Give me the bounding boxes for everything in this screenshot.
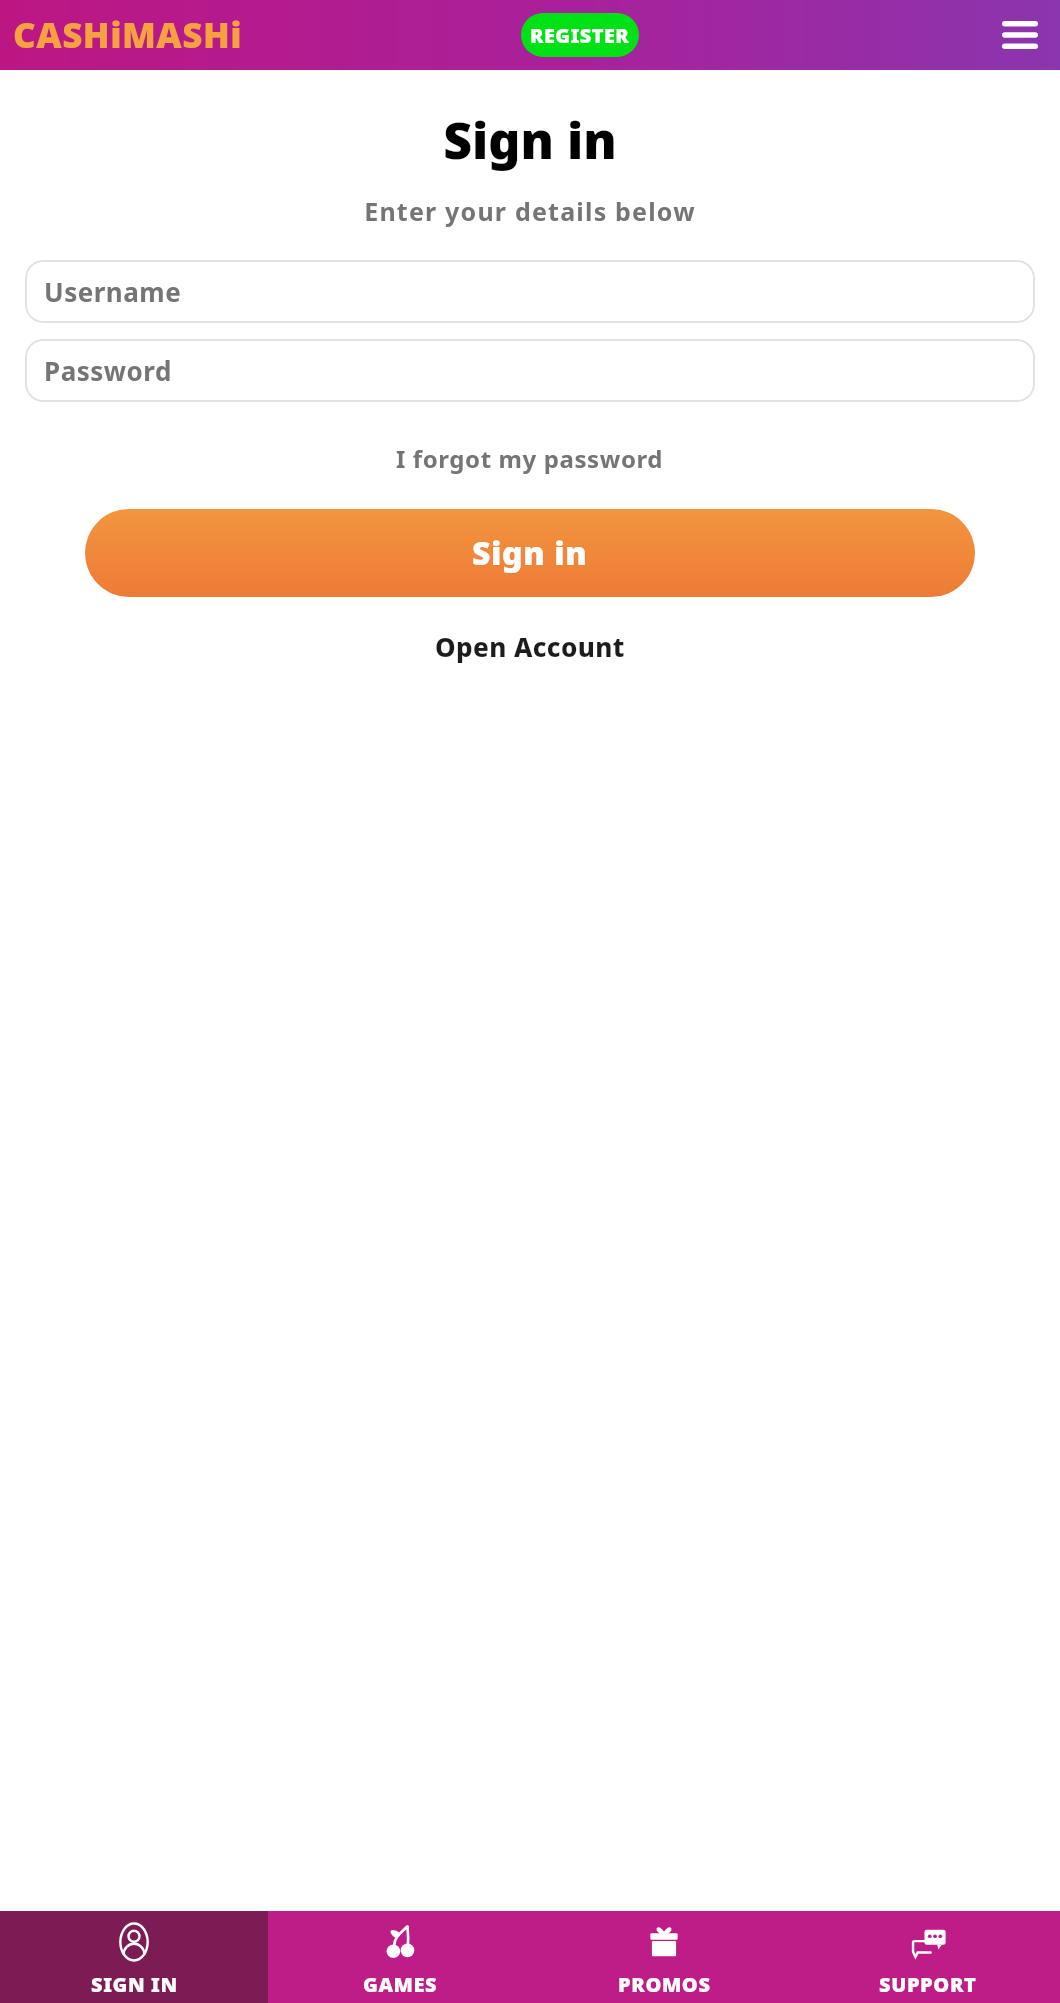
button[interactable]: I forgot my password xyxy=(0,436,1060,481)
staticText: SUPPORT xyxy=(879,1971,977,1998)
button[interactable]: CashiMashi home xyxy=(11,7,245,63)
button[interactable]: Sign in xyxy=(85,509,975,597)
button[interactable]: PROMOS xyxy=(532,1911,796,2003)
staticText: PROMOS xyxy=(618,1971,711,1998)
button[interactable]: Password xyxy=(25,339,1035,402)
staticText: Sign in xyxy=(472,531,588,575)
staticText: Open Account xyxy=(435,629,625,664)
staticText: SIGN IN xyxy=(91,1971,178,1998)
button[interactable]: SIGN IN xyxy=(0,1911,268,2003)
staticText: Username xyxy=(44,274,182,309)
button[interactable]: REGISTER xyxy=(521,13,639,57)
staticText: Enter your details below xyxy=(0,194,1060,228)
button[interactable]: Menu xyxy=(994,9,1046,61)
staticText: GAMES xyxy=(363,1971,438,1998)
button[interactable]: GAMES xyxy=(268,1911,532,2003)
staticText: Password xyxy=(44,353,172,388)
staticText: REGISTER xyxy=(530,22,630,49)
staticText: I forgot my password xyxy=(396,442,664,475)
button[interactable]: SUPPORT xyxy=(796,1911,1060,2003)
button[interactable]: Username xyxy=(25,260,1035,323)
button[interactable]: Open Account xyxy=(0,623,1060,670)
staticText: Sign in xyxy=(0,106,1060,174)
staticText: CASHiMASHi xyxy=(13,11,243,59)
